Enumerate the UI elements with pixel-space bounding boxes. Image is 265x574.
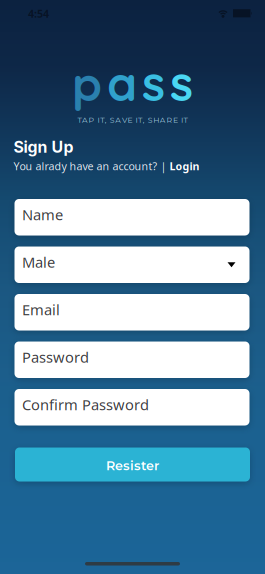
staticText: V bbox=[122, 115, 127, 125]
staticText: Resister bbox=[106, 458, 159, 473]
staticText: H bbox=[153, 115, 159, 125]
staticText: R bbox=[166, 115, 172, 125]
staticText: You alrady have an account? | bbox=[13, 159, 169, 173]
staticText: Male bbox=[22, 252, 55, 272]
button[interactable]: Confirm Password bbox=[14, 389, 249, 425]
staticText: T bbox=[77, 115, 81, 125]
button[interactable]: Name bbox=[14, 199, 249, 235]
staticText: Confirm Password bbox=[22, 395, 149, 414]
staticText: a bbox=[107, 53, 137, 113]
staticText: , bbox=[143, 115, 145, 125]
staticText: Email bbox=[22, 300, 60, 319]
staticText: E bbox=[173, 115, 178, 125]
button[interactable]: Resister bbox=[15, 447, 250, 481]
staticText: I bbox=[181, 115, 183, 125]
staticText: Login bbox=[169, 159, 199, 173]
button[interactable]: Password bbox=[14, 341, 249, 378]
staticText: I bbox=[98, 115, 100, 125]
button[interactable]: Male bbox=[14, 246, 249, 283]
staticText: S bbox=[110, 115, 115, 125]
staticText: Sign Up bbox=[13, 137, 73, 157]
staticText: , bbox=[105, 115, 107, 125]
staticText: E bbox=[127, 115, 132, 125]
staticText: T bbox=[100, 115, 104, 125]
staticText: A bbox=[115, 115, 121, 125]
button[interactable]: Email bbox=[14, 294, 249, 330]
staticText: A bbox=[82, 115, 88, 125]
staticText: P bbox=[88, 115, 94, 125]
staticText: 4:54 bbox=[28, 6, 49, 21]
staticText: S bbox=[148, 115, 153, 125]
staticText: s bbox=[142, 53, 165, 113]
staticText: A bbox=[160, 115, 166, 125]
staticText: Name bbox=[22, 205, 63, 224]
staticText: p bbox=[72, 53, 102, 113]
button[interactable]: Login bbox=[169, 159, 199, 173]
staticText: T bbox=[184, 115, 188, 125]
staticText: Password bbox=[22, 347, 89, 367]
staticText: s bbox=[170, 53, 193, 113]
staticText: I bbox=[135, 115, 137, 125]
staticText: T bbox=[138, 115, 142, 125]
